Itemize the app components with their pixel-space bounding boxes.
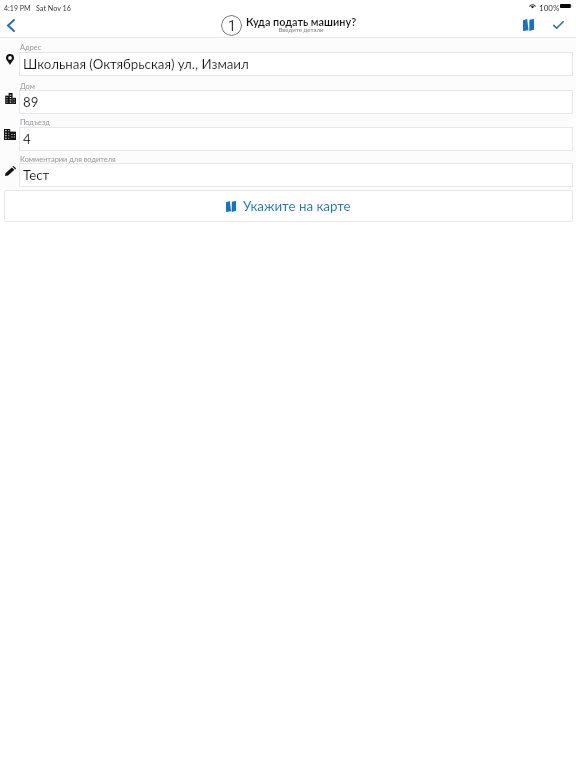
- button[interactable]: Школьная (Октябрьская) ул., Измаил: [19, 52, 573, 76]
- staticText: 100%: [539, 3, 560, 13]
- staticText: 4:19 PM: [4, 4, 31, 12]
- button[interactable]: 89: [19, 90, 573, 114]
- staticText: 4: [23, 131, 31, 147]
- button[interactable]: Тест: [19, 163, 573, 187]
- staticText: Тест: [23, 167, 50, 183]
- staticText: Куда подать машину?: [246, 15, 357, 28]
- staticText: Sat Nov 16: [36, 4, 71, 13]
- staticText: Адрес: [20, 43, 42, 52]
- button[interactable]: Done: [548, 15, 568, 35]
- staticText: Дом: [20, 82, 35, 91]
- staticText: 1: [228, 18, 236, 34]
- staticText: Комментарии для водителя: [20, 155, 116, 164]
- staticText: Укажите на карте: [243, 198, 351, 214]
- button[interactable]: Укажите на карте: [4, 190, 573, 222]
- staticText: 89: [23, 94, 39, 110]
- button[interactable]: Show map: [518, 15, 538, 35]
- button[interactable]: 4: [19, 127, 573, 151]
- staticText: Введите детали: [246, 26, 356, 33]
- button[interactable]: Back: [1, 15, 21, 35]
- staticText: Школьная (Октябрьская) ул., Измаил: [23, 56, 249, 72]
- staticText: Подъезд: [20, 118, 50, 127]
